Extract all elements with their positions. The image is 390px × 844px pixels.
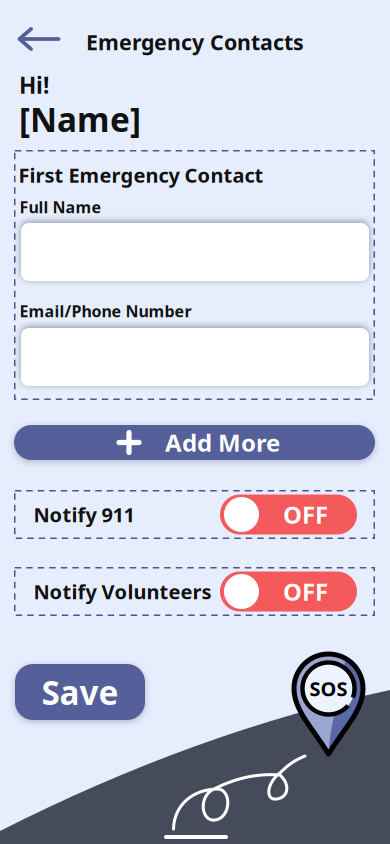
button[interactable]: Save — [15, 664, 145, 720]
staticText: Save — [41, 670, 118, 714]
staticText: SOS — [309, 675, 347, 702]
button[interactable]: Notification off — [220, 571, 357, 611]
staticText: Email/Phone Number — [19, 300, 191, 322]
button[interactable]: Notification off — [220, 494, 357, 534]
staticText: Full Name — [19, 196, 101, 218]
staticText: OFF — [283, 576, 328, 607]
staticText: Hi! — [19, 70, 49, 100]
button[interactable]: Add More — [14, 425, 375, 460]
staticText: OFF — [283, 499, 328, 530]
staticText: [Name] — [19, 97, 141, 141]
staticText: Notify Volunteers — [33, 578, 211, 605]
staticText: Add More — [165, 427, 280, 458]
button[interactable]: Back — [7, 17, 71, 61]
staticText: Notify 911 — [33, 501, 134, 528]
staticText: First Emergency Contact — [18, 162, 263, 188]
staticText: Emergency Contacts — [86, 28, 304, 56]
